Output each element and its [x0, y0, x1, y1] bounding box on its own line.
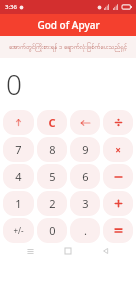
staticText: +/-: [13, 225, 24, 236]
button[interactable]: ×: [103, 137, 133, 162]
button[interactable]: 9: [70, 137, 100, 162]
staticText: 9: [82, 142, 89, 157]
button[interactable]: 6: [70, 164, 100, 189]
staticText: 3: [82, 196, 89, 211]
button[interactable]: Back: [98, 243, 114, 259]
button[interactable]: 5: [37, 164, 67, 189]
button[interactable]: Recents: [22, 243, 38, 259]
button[interactable]: C: [37, 110, 67, 135]
other: Minus: [114, 174, 123, 180]
other: History up: [14, 118, 23, 127]
button[interactable]: Equals: [103, 218, 133, 243]
staticText: 0: [6, 65, 22, 103]
staticText: C: [48, 115, 56, 130]
staticText: 2: [49, 196, 56, 211]
button[interactable]: 7: [3, 137, 34, 162]
button[interactable]: +/-: [3, 218, 34, 243]
staticText: 7: [15, 142, 22, 157]
staticText: အောက်တွင်ကြိုးစားရန် ၁ ချောက်လုံးဖြစ်က်ပ…: [9, 43, 127, 52]
other: Backspace: [80, 119, 91, 127]
button[interactable]: Divide: [103, 110, 133, 135]
staticText: ×: [115, 143, 121, 157]
button[interactable]: Plus: [103, 191, 133, 216]
other: Divide: [114, 118, 123, 127]
button[interactable]: .: [70, 218, 100, 243]
other: Equals: [114, 227, 123, 234]
staticText: 5: [49, 169, 56, 184]
other: Plus: [114, 199, 123, 208]
staticText: God of Apyar: [37, 18, 100, 32]
button[interactable]: 3: [70, 191, 100, 216]
button[interactable]: History up: [3, 110, 34, 135]
staticText: .: [84, 223, 87, 238]
button[interactable]: 0: [37, 218, 67, 243]
button[interactable]: 2: [37, 191, 67, 216]
button[interactable]: 1: [3, 191, 34, 216]
staticText: 0: [49, 223, 56, 238]
staticText: 8: [49, 142, 56, 157]
staticText: 1: [15, 196, 22, 211]
button[interactable]: Home: [60, 243, 76, 259]
button[interactable]: 8: [37, 137, 67, 162]
staticText: 6: [82, 169, 89, 184]
button[interactable]: Minus: [103, 164, 133, 189]
button[interactable]: 4: [3, 164, 34, 189]
staticText: 4: [15, 169, 22, 184]
button[interactable]: Backspace: [70, 110, 100, 135]
staticText: 3:36: [5, 3, 17, 11]
